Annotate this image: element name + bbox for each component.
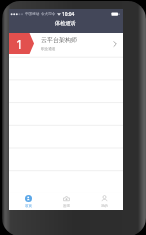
staticText: 发现 [63,204,70,208]
staticText: 职业通道 [41,47,56,52]
other: 打开 [111,40,119,48]
staticText: 云平台架构师 [41,36,77,44]
staticText: 令犬司令 [41,12,56,17]
button[interactable] [9,80,123,103]
button[interactable]: 首页 [9,193,47,210]
staticText: 10:04 [62,11,75,18]
staticText: 中国移动 [25,12,40,17]
staticText: 首页 [25,204,32,208]
staticText: 我的 [101,204,108,208]
button[interactable]: 1 [9,33,123,57]
button[interactable]: 我的 [85,193,123,210]
button[interactable]: 发现 [47,193,85,210]
staticText: 体检通话 [55,20,76,27]
staticText: 1 [16,36,23,52]
